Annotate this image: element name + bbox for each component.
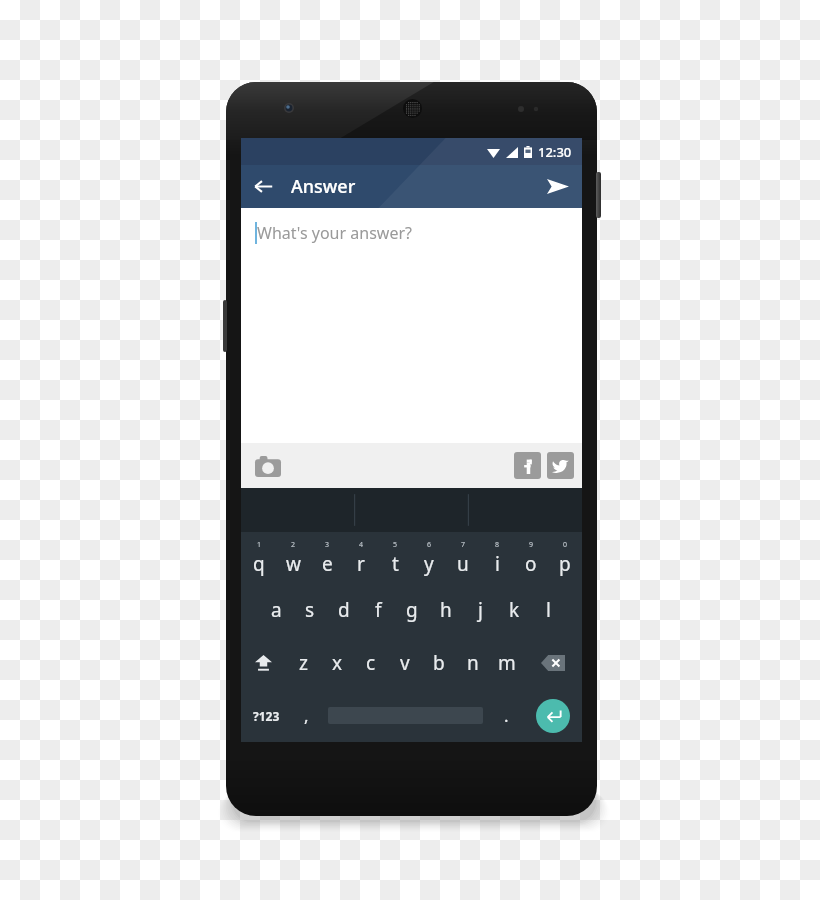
staticText: r: [357, 551, 365, 577]
button[interactable]: Enter: [523, 689, 582, 742]
staticText: 0: [563, 540, 568, 550]
staticText: 4: [359, 540, 364, 550]
staticText: m: [498, 650, 516, 676]
button[interactable]: 3: [310, 532, 344, 584]
button[interactable]: s: [293, 584, 327, 636]
button[interactable]: n: [456, 636, 490, 689]
button[interactable]: g: [395, 584, 429, 636]
staticText: ,: [304, 704, 309, 727]
staticText: ?123: [253, 708, 280, 724]
staticText: a: [271, 597, 282, 623]
staticText: z: [299, 650, 308, 676]
staticText: q: [253, 551, 265, 577]
button[interactable]: Shift: [241, 636, 286, 689]
button[interactable]: l: [531, 584, 565, 636]
staticText: 12:30: [538, 143, 572, 161]
button[interactable]: 2: [276, 532, 310, 584]
button[interactable]: 9: [514, 532, 548, 584]
button[interactable]: Send: [534, 165, 582, 208]
button[interactable]: c: [354, 636, 388, 689]
staticText: w: [286, 551, 301, 577]
staticText: 5: [393, 540, 398, 550]
button[interactable]: b: [422, 636, 456, 689]
button[interactable]: 7: [446, 532, 480, 584]
button[interactable]: h: [429, 584, 463, 636]
staticText: h: [440, 597, 452, 623]
staticText: 8: [495, 540, 500, 550]
button[interactable]: 6: [412, 532, 446, 584]
button[interactable]: ,: [292, 689, 321, 742]
staticText: 2: [291, 540, 296, 550]
staticText: g: [406, 597, 418, 623]
button[interactable]: Back: [241, 165, 285, 208]
button[interactable]: 0: [548, 532, 582, 584]
staticText: d: [338, 597, 350, 623]
button[interactable]: z: [286, 636, 320, 689]
button[interactable]: Share on Twitter: [547, 452, 574, 479]
button[interactable]: 4: [344, 532, 378, 584]
button[interactable]: k: [497, 584, 531, 636]
staticText: u: [457, 551, 469, 577]
staticText: i: [495, 551, 500, 577]
button[interactable]: x: [320, 636, 354, 689]
button[interactable]: ?123: [241, 689, 292, 742]
button[interactable]: Backspace: [524, 636, 582, 689]
button[interactable]: f: [361, 584, 395, 636]
button[interactable]: m: [490, 636, 524, 689]
staticText: f: [375, 597, 382, 623]
staticText: n: [467, 650, 479, 676]
staticText: k: [509, 597, 520, 623]
staticText: y: [424, 551, 434, 577]
staticText: Answer: [291, 174, 356, 199]
button[interactable]: d: [327, 584, 361, 636]
button[interactable]: a: [259, 584, 293, 636]
staticText: c: [366, 650, 376, 676]
button[interactable]: .: [490, 689, 523, 742]
staticText: j: [478, 597, 483, 623]
staticText: v: [400, 650, 410, 676]
button[interactable]: Space: [321, 689, 490, 742]
staticText: e: [322, 551, 333, 577]
staticText: 1: [257, 540, 262, 550]
staticText: 9: [529, 540, 534, 550]
staticText: 7: [461, 540, 466, 550]
button[interactable]: 1: [241, 532, 276, 584]
staticText: l: [546, 597, 551, 623]
staticText: 3: [325, 540, 330, 550]
staticText: What's your answer?: [257, 222, 412, 244]
staticText: p: [559, 551, 571, 577]
staticText: t: [392, 551, 399, 577]
button[interactable]: 5: [378, 532, 412, 584]
button[interactable]: Share on Facebook: [514, 452, 541, 479]
staticText: 6: [427, 540, 432, 550]
staticText: s: [305, 597, 315, 623]
button[interactable]: Add photo: [249, 447, 287, 485]
staticText: b: [433, 650, 445, 676]
staticText: o: [525, 551, 537, 577]
staticText: .: [504, 704, 509, 727]
button[interactable]: 8: [480, 532, 514, 584]
staticText: x: [332, 650, 343, 676]
button[interactable]: j: [463, 584, 497, 636]
button[interactable]: v: [388, 636, 422, 689]
